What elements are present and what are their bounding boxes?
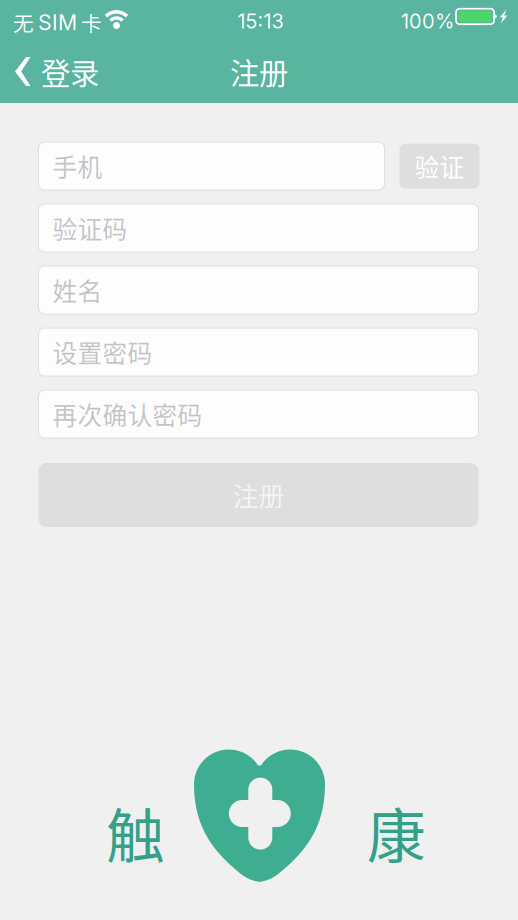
staticText: 登录 [41,50,99,93]
staticText: 注册 [230,50,288,93]
button[interactable]: 再次确认密码 [38,390,478,438]
button[interactable]: 姓名 [38,266,478,314]
staticText: 15:13 [237,9,283,33]
staticText: 注册 [232,476,284,514]
staticText: 无 [13,8,34,37]
button[interactable]: 登录 [0,40,115,103]
staticText: 再次确认密码 [52,396,202,432]
staticText: 手机 [52,148,102,184]
staticText: 验证码 [52,210,127,246]
staticText: 验证 [414,148,464,184]
button[interactable]: 手机 [38,142,384,190]
staticText: 触 [106,790,165,875]
staticText: 卡 [81,8,102,37]
staticText: 设置密码 [52,334,152,370]
button[interactable]: 设置密码 [38,328,478,376]
staticText: 100% [401,9,454,33]
button[interactable]: 验证 [399,143,479,188]
button[interactable]: 验证码 [38,204,478,252]
staticText: 姓名 [52,272,102,308]
staticText: SIM [38,10,77,35]
staticText: 康 [367,790,426,875]
